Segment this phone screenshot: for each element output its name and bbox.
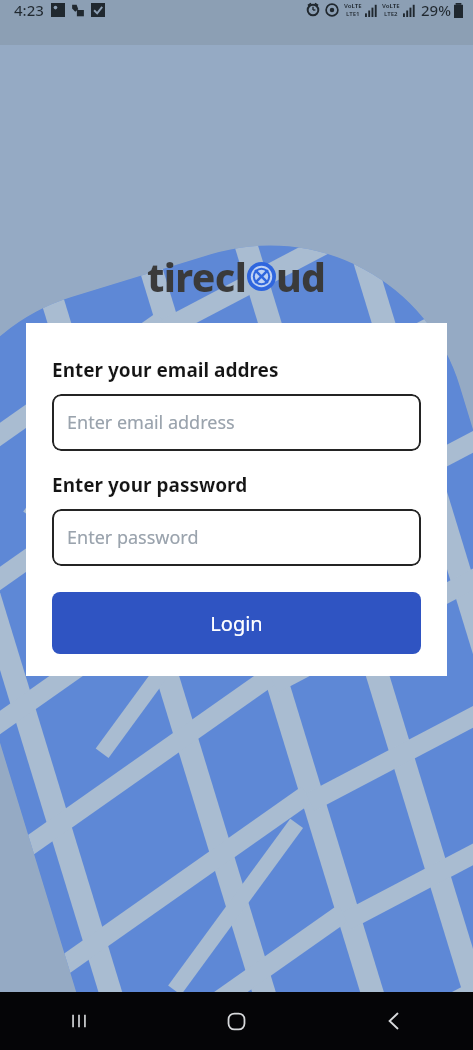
staticText: Enter password: [67, 525, 199, 550]
staticText: Enter your email addres: [52, 357, 279, 383]
staticText: tirecl: [147, 250, 247, 303]
button[interactable]: Back: [315, 992, 473, 1050]
button[interactable]: Enter password: [52, 509, 421, 566]
staticText: 29%: [421, 0, 451, 20]
staticText: LTE2: [384, 10, 398, 18]
staticText: VoLTE: [344, 2, 362, 10]
staticText: VoLTE: [382, 2, 400, 10]
staticText: Enter email address: [67, 410, 235, 435]
staticText: Enter your password: [52, 472, 248, 498]
staticText: ud: [276, 250, 326, 303]
button[interactable]: Home: [157, 992, 315, 1050]
button[interactable]: Login: [52, 592, 421, 654]
staticText: LTE1: [346, 10, 360, 18]
button[interactable]: Enter email address: [52, 394, 421, 451]
staticText: 4:23: [14, 0, 44, 20]
button[interactable]: Recent apps: [0, 992, 157, 1050]
staticText: Login: [210, 610, 263, 637]
